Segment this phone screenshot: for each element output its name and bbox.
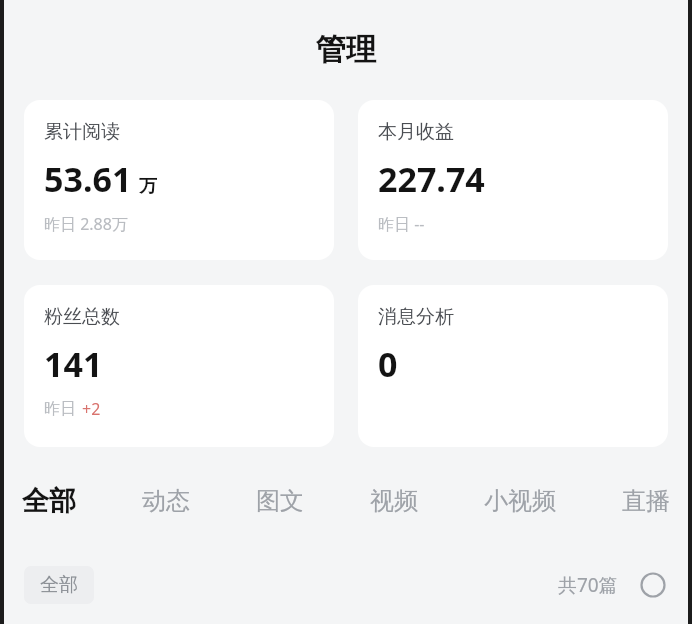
staticText: 图文: [256, 486, 304, 516]
button[interactable]: 视频: [368, 482, 420, 520]
staticText: 小视频: [484, 486, 556, 516]
button[interactable]: 粉丝总数: [24, 285, 334, 447]
button[interactable]: 直播: [620, 482, 672, 520]
staticText: 全部: [22, 484, 76, 518]
button[interactable]: 动态: [140, 482, 192, 520]
button[interactable]: 全部: [24, 566, 94, 604]
staticText: 227.74: [378, 156, 485, 202]
staticText: 管理: [316, 31, 376, 69]
staticText: 共70篇: [558, 572, 618, 598]
staticText: 昨日 2.88万: [44, 213, 128, 235]
staticText: 动态: [142, 486, 190, 516]
staticText: 昨日: [44, 399, 76, 419]
button[interactable]: 图文: [254, 482, 306, 520]
staticText: 昨日 --: [378, 213, 425, 235]
button[interactable]: 累计阅读: [24, 100, 334, 260]
staticText: 消息分析: [378, 305, 454, 329]
staticText: 万: [139, 175, 157, 198]
button[interactable]: 小视频: [482, 482, 558, 520]
staticText: 粉丝总数: [44, 305, 120, 329]
staticText: 全部: [40, 573, 78, 597]
staticText: 视频: [370, 486, 418, 516]
button[interactable]: 全部: [20, 480, 78, 522]
button[interactable]: 本月收益: [358, 100, 668, 260]
button[interactable]: 消息分析: [358, 285, 668, 447]
staticText: +2: [82, 398, 101, 420]
staticText: 53.61: [44, 156, 132, 202]
staticText: 直播: [622, 486, 670, 516]
staticText: 累计阅读: [44, 120, 120, 144]
staticText: 本月收益: [378, 120, 454, 144]
button[interactable]: Refresh: [638, 570, 668, 600]
staticText: 141: [44, 341, 103, 387]
staticText: 0: [378, 341, 398, 387]
